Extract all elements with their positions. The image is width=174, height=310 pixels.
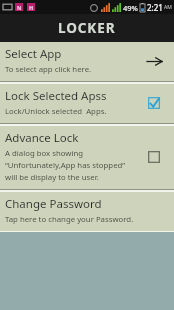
staticText: AM [164,4,172,11]
staticText: Change Password [5,196,102,212]
staticText: LOCKER [58,19,116,37]
staticText: H [29,4,34,11]
button[interactable]: Checked [145,94,163,112]
button[interactable]: Select App [144,51,164,71]
staticText: 2:21 [147,2,163,13]
button[interactable]: Select App [0,42,174,81]
staticText: N [17,4,22,11]
button[interactable]: Change Password [0,192,174,231]
staticText: Lock/Unlock selected Apps. [5,106,107,117]
staticText: “Unfortunately,App has stopped” [5,160,126,171]
staticText: A dialog box showing [5,148,84,159]
staticText: Tap here to change your Password. [5,214,134,225]
button[interactable]: Lock Selected Apss [0,84,174,123]
staticText: Select App [5,46,62,62]
button[interactable]: Advance Lock [0,126,174,189]
staticText: 49% [123,3,138,13]
staticText: Lock Selected Apss [5,88,107,104]
staticText: Advance Lock [5,130,79,146]
staticText: will be display to the user. [5,172,99,183]
staticText: To select app click here. [5,64,92,75]
button[interactable]: Unchecked [145,148,163,166]
